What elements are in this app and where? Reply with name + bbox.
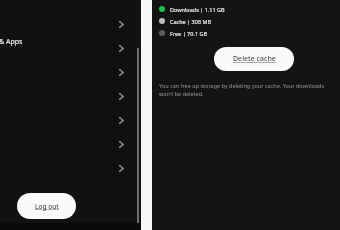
staticText: Cache | 306 MB xyxy=(170,18,212,25)
button[interactable]: Open xyxy=(0,132,141,156)
other: Open xyxy=(116,67,127,78)
other: Open xyxy=(116,43,127,54)
other: Open xyxy=(116,115,127,126)
button[interactable]: Open xyxy=(0,36,141,60)
button[interactable]: Open xyxy=(0,60,141,84)
button[interactable]: Downloads | 1.11 GB xyxy=(159,3,332,15)
button[interactable]: Open xyxy=(0,108,141,132)
staticText: You can free up storage by deleting your… xyxy=(159,82,332,98)
other: Open xyxy=(116,19,127,30)
other: Open xyxy=(116,139,127,150)
button[interactable]: Log out xyxy=(17,193,76,219)
button[interactable]: Cache | 306 MB xyxy=(159,15,332,27)
button[interactable]: Delete cache xyxy=(214,47,294,71)
staticText: Free | 70.1 GB xyxy=(170,30,208,37)
other: Open xyxy=(116,91,127,102)
other: Open xyxy=(116,163,127,174)
button[interactable]: Free | 70.1 GB xyxy=(159,27,332,39)
staticText: Downloads | 1.11 GB xyxy=(170,6,225,13)
button[interactable]: Open xyxy=(0,12,141,36)
button[interactable]: Open xyxy=(0,156,141,180)
staticText: & Apps xyxy=(0,37,23,47)
staticText: Delete cache xyxy=(233,54,276,64)
button[interactable]: Open xyxy=(0,84,141,108)
staticText: Log out xyxy=(35,202,59,211)
